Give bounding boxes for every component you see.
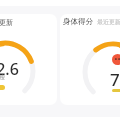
staticText: 偏瘦 bbox=[0, 74, 5, 81]
staticText: 身体得分 bbox=[63, 17, 93, 26]
staticText: 78 bbox=[110, 68, 120, 91]
staticText: 最近更新 bbox=[97, 18, 120, 26]
button[interactable] bbox=[60, 14, 120, 105]
staticText: 最近更新 bbox=[0, 18, 13, 27]
staticText: 22.6 bbox=[0, 58, 19, 80]
button[interactable] bbox=[0, 14, 57, 105]
